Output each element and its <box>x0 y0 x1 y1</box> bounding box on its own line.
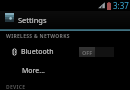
staticText: 3:37 <box>113 0 129 11</box>
staticText: Bluetooth <box>21 47 54 57</box>
button[interactable]: OFF <box>79 47 114 57</box>
other: Bluetooth <box>12 48 17 56</box>
other: Settings <box>5 13 14 22</box>
button[interactable]: Settings <box>0 11 130 29</box>
button[interactable]: Bluetooth <box>0 42 130 61</box>
staticText: WIRELESS & NETWORKS <box>6 33 70 40</box>
staticText: Settings <box>18 15 47 25</box>
button[interactable]: More... <box>0 61 130 79</box>
staticText: OFF <box>82 49 93 56</box>
staticText: DEVICE <box>6 84 26 90</box>
staticText: More... <box>22 66 45 76</box>
